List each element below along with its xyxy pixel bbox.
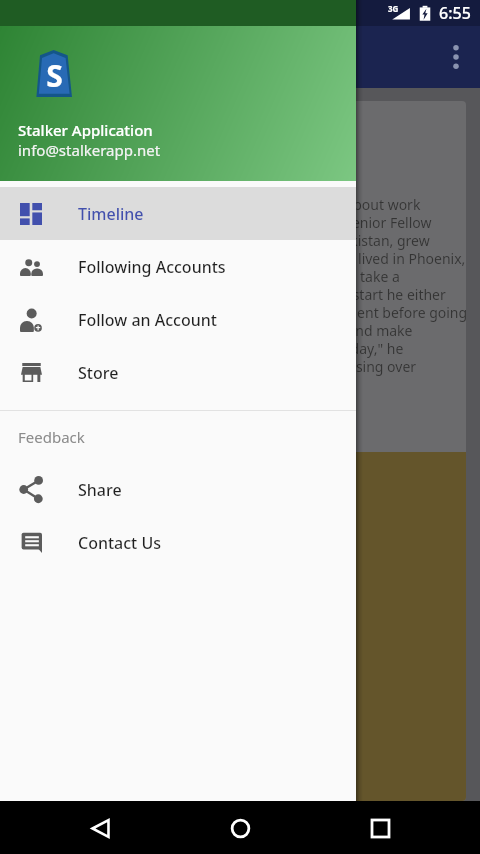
staticText: Following Accounts <box>78 256 226 278</box>
staticText: Feedback <box>18 427 85 447</box>
button[interactable]: Home <box>220 808 260 848</box>
button[interactable]: Contact Us <box>0 516 356 569</box>
button[interactable]: More options <box>432 33 480 81</box>
staticText: Timeline <box>78 203 144 225</box>
button[interactable]: Share <box>0 463 356 516</box>
button[interactable]: Following Accounts <box>0 240 356 293</box>
staticText: 6:55 <box>439 2 471 24</box>
button[interactable]: Follow an Account <box>0 293 356 346</box>
staticText: info@stalkerapp.net <box>18 140 161 160</box>
button[interactable]: Store <box>0 346 356 399</box>
staticText: Follow an Account <box>78 309 217 331</box>
button[interactable]: Recent apps <box>360 808 400 848</box>
button[interactable]: Back <box>80 808 120 848</box>
staticText: He does not often like to speak about hi… <box>26 195 466 376</box>
staticText: Store <box>78 362 119 384</box>
staticText: Contact Us <box>78 532 161 554</box>
staticText: 3G <box>388 3 399 14</box>
staticText: S <box>46 55 63 96</box>
button[interactable]: Timeline <box>0 187 356 240</box>
staticText: Stalker Application <box>18 120 153 140</box>
staticText: Share <box>78 479 122 501</box>
